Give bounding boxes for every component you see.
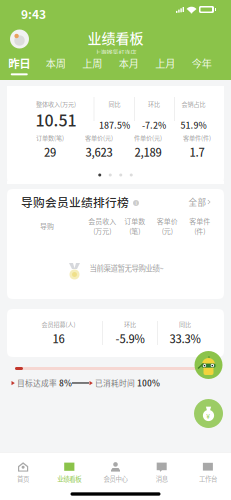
- button[interactable]: 业绩看板: [46, 457, 92, 487]
- staticText: 10.51: [35, 108, 76, 131]
- staticText: 上海铧氢虹许店: [94, 48, 136, 57]
- staticText: 33.3%: [169, 330, 200, 346]
- staticText: 客单价(元): [85, 133, 113, 142]
- staticText: 3,623: [85, 144, 112, 160]
- staticText: 工作台: [199, 474, 217, 483]
- button[interactable]: 上周: [74, 54, 110, 76]
- staticText: 消息: [156, 474, 168, 483]
- staticText: 上月: [155, 56, 175, 70]
- button[interactable]: 助手: [194, 351, 222, 379]
- staticText: 目标达成率: [15, 377, 59, 389]
- button[interactable]: 本月: [110, 54, 147, 76]
- staticText: 整体收入(万元): [36, 99, 76, 108]
- staticText: 环比: [124, 319, 136, 328]
- staticText: 同比: [179, 319, 191, 328]
- staticText: 当前渠道暂无导购业绩~: [89, 263, 163, 273]
- staticText: 业绩看板: [57, 474, 81, 483]
- staticText: -7.2%: [142, 118, 166, 131]
- button[interactable]: 本周: [37, 54, 74, 76]
- staticText: ¥: [206, 412, 210, 421]
- staticText: 会员招募(人): [41, 319, 75, 328]
- staticText: 1.7: [189, 144, 204, 160]
- staticText: 今年: [192, 56, 212, 70]
- button[interactable]: 消息: [139, 457, 185, 487]
- staticText: (笔): [129, 226, 140, 236]
- staticText: 导购会员业绩排行榜: [21, 193, 129, 210]
- staticText: 16: [52, 330, 64, 346]
- button[interactable]: 会员中心: [92, 457, 139, 487]
- staticText: 9:43: [21, 5, 46, 22]
- button[interactable]: 收益: [194, 399, 223, 428]
- staticText: 导购: [40, 221, 54, 231]
- staticText: 会员收入: [88, 216, 116, 226]
- staticText: 187.5%: [99, 118, 130, 131]
- staticText: 会员中心: [103, 474, 127, 483]
- staticText: 51.9%: [180, 118, 206, 131]
- staticText: 昨日: [8, 55, 30, 71]
- staticText: 业绩看板: [87, 27, 143, 48]
- staticText: (件): [194, 226, 205, 236]
- staticText: 29: [44, 144, 56, 160]
- staticText: 客单件(件): [183, 133, 211, 142]
- button[interactable]: 昨日: [1, 54, 37, 76]
- button[interactable]: 今年: [183, 54, 220, 76]
- staticText: 订单数(笔): [36, 133, 64, 142]
- staticText: 客单价: [157, 216, 178, 226]
- staticText: 同比: [108, 99, 120, 108]
- staticText: (万元): [93, 226, 111, 236]
- staticText: 首页: [17, 474, 29, 483]
- button[interactable]: 全部: [188, 196, 211, 208]
- staticText: 件单价(元): [134, 133, 162, 142]
- staticText: 8%: [59, 377, 72, 389]
- staticText: -5.9%: [115, 330, 144, 346]
- staticText: 上周: [82, 56, 102, 70]
- button[interactable]: Profile: [10, 29, 29, 48]
- staticText: 100%: [137, 377, 160, 389]
- staticText: 2,189: [134, 144, 161, 160]
- button[interactable]: 首页: [0, 457, 46, 487]
- staticText: 客单件: [189, 216, 210, 226]
- staticText: 订单数: [124, 216, 145, 226]
- button[interactable]: 上月: [147, 54, 183, 76]
- staticText: 会销占比: [181, 99, 205, 108]
- staticText: (元): [162, 226, 173, 236]
- staticText: 全部: [188, 196, 206, 208]
- staticText: 已消耗时间: [93, 377, 137, 389]
- staticText: 本周: [46, 56, 66, 70]
- staticText: 环比: [148, 99, 160, 108]
- staticText: 本月: [119, 56, 139, 70]
- button[interactable]: 工作台: [185, 457, 231, 487]
